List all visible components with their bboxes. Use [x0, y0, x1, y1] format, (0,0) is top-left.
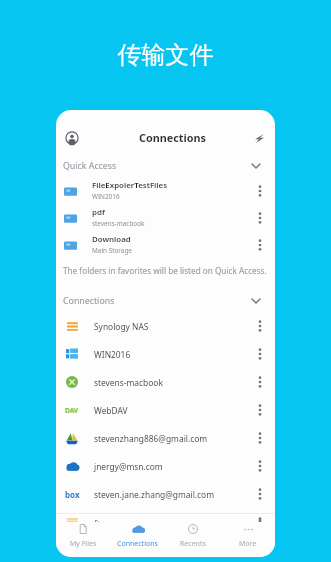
staticText: Connections — [63, 295, 115, 307]
button[interactable]: More options — [253, 238, 267, 252]
button[interactable]: pdf — [56, 204, 275, 231]
staticText: Main Storage — [92, 246, 132, 255]
staticText: Recents — [180, 539, 206, 549]
button[interactable]: Connections — [56, 290, 275, 312]
staticText: Quick Access — [63, 160, 117, 172]
staticText: stevens-macbook — [92, 219, 145, 228]
staticText: box — [65, 489, 80, 500]
button[interactable]: More options — [253, 459, 267, 473]
button[interactable]: More options — [253, 431, 267, 445]
button[interactable]: box — [56, 480, 275, 508]
staticText: stevenzhang886@gmail.com — [94, 433, 253, 444]
staticText: jnergy@msn.com — [94, 461, 253, 472]
button[interactable]: stevens-macbook — [56, 368, 275, 396]
button[interactable]: jnergy@msn.com — [56, 452, 275, 480]
staticText: WIN2016 — [94, 349, 253, 360]
button[interactable]: More options — [253, 319, 267, 333]
button[interactable]: Recents — [165, 518, 220, 553]
button[interactable]: FileExpolerTestFiles — [56, 177, 275, 204]
button[interactable]: More — [220, 518, 275, 553]
button[interactable]: Quick Access — [56, 155, 275, 177]
button[interactable]: More options — [253, 518, 267, 522]
button[interactable]: ftp-server — [56, 518, 275, 522]
button[interactable]: More options — [253, 487, 267, 501]
staticText: My Files — [70, 539, 97, 549]
button[interactable]: WIN2016 — [56, 340, 275, 368]
staticText: steven.jane.zhang@gmail.com — [94, 489, 253, 500]
button[interactable]: More options — [253, 347, 267, 361]
staticText: More — [239, 539, 257, 549]
staticText: DAV — [65, 406, 79, 415]
staticText: WebDAV — [94, 405, 253, 416]
button[interactable]: stevenzhang886@gmail.com — [56, 424, 275, 452]
staticText: WIN2016 — [92, 192, 120, 201]
staticText: Connections — [117, 539, 158, 549]
button[interactable]: My Files — [56, 518, 110, 553]
staticText: stevens-macbook — [94, 377, 253, 388]
button[interactable]: More options — [253, 403, 267, 417]
button[interactable]: More options — [253, 184, 267, 198]
staticText: 传输文件 — [0, 40, 331, 70]
button[interactable]: Connections — [110, 518, 165, 553]
button[interactable]: DAV — [56, 396, 275, 424]
button[interactable]: Download — [56, 231, 275, 258]
staticText: FileExpolerTestFiles — [92, 180, 168, 191]
button[interactable]: Synology NAS — [56, 312, 275, 340]
staticText: Connections — [139, 130, 206, 145]
staticText: Synology NAS — [94, 321, 253, 332]
staticText: pdf — [92, 207, 105, 218]
staticText: The folders in favorites will be listed … — [63, 265, 267, 276]
button[interactable]: More options — [253, 375, 267, 389]
button[interactable]: Account — [62, 128, 82, 148]
button[interactable]: More options — [253, 211, 267, 225]
staticText: ftp-server — [94, 518, 253, 522]
button[interactable]: Quick connect — [250, 129, 268, 147]
staticText: Download — [92, 234, 131, 245]
